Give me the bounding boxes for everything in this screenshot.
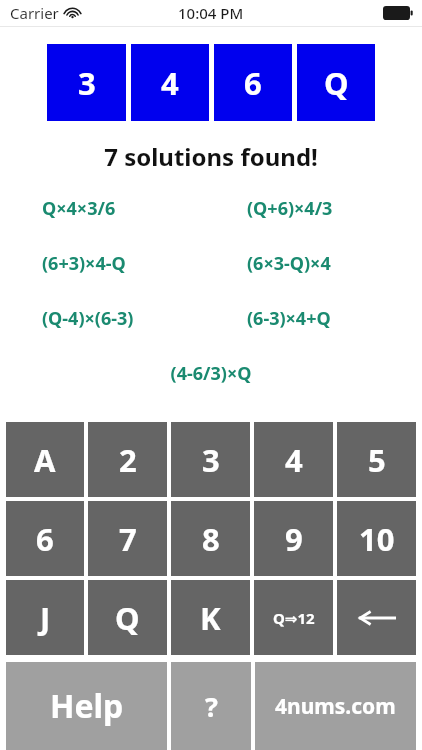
button[interactable]: 4nums.com — [255, 662, 416, 750]
button[interactable]: Backspace — [337, 580, 416, 655]
button[interactable]: Q — [88, 580, 167, 655]
staticText: ? — [205, 688, 218, 725]
button[interactable]: 9 — [254, 501, 333, 576]
staticText: K — [200, 597, 221, 639]
staticText: 4 — [161, 62, 179, 104]
staticText: 9 — [285, 518, 303, 560]
button[interactable]: 3 — [171, 422, 250, 497]
staticText: Q — [115, 597, 140, 639]
staticText: 2 — [119, 439, 137, 481]
staticText: (4-6/3)×Q — [0, 361, 422, 386]
staticText: Q — [324, 62, 349, 104]
button[interactable]: 3 — [47, 44, 126, 121]
button[interactable]: 5 — [337, 422, 416, 497]
button[interactable]: J — [6, 580, 84, 655]
staticText: 8 — [202, 518, 220, 560]
staticText: J — [40, 597, 51, 639]
button[interactable]: 2 — [88, 422, 167, 497]
staticText: 5 — [368, 439, 386, 481]
button[interactable]: 7 — [88, 501, 167, 576]
staticText: (Q+6)×4/3 — [247, 196, 333, 221]
staticText: 4 — [285, 439, 303, 481]
staticText: (6-3)×4+Q — [247, 306, 331, 331]
button[interactable]: 4 — [254, 422, 333, 497]
button[interactable]: A — [6, 422, 84, 497]
staticText: Q⇒12 — [273, 608, 315, 628]
button[interactable]: Q⇒12 — [254, 580, 333, 655]
button[interactable]: Help — [6, 662, 167, 750]
staticText: 10:04 PM — [178, 3, 244, 23]
button[interactable]: 6 — [214, 44, 292, 121]
staticText: (Q-4)×(6-3) — [42, 306, 134, 331]
staticText: Q×4×3/6 — [42, 196, 116, 221]
staticText: 6 — [244, 62, 262, 104]
button[interactable]: Q — [297, 44, 375, 121]
staticText: 10 — [359, 518, 395, 560]
staticText: Help — [50, 684, 124, 728]
staticText: (6×3-Q)×4 — [247, 251, 331, 276]
staticText: 4nums.com — [275, 692, 396, 721]
staticText: 6 — [36, 518, 54, 560]
button[interactable]: ? — [171, 662, 251, 750]
staticText: (6+3)×4-Q — [42, 251, 126, 276]
button[interactable]: 10 — [337, 501, 416, 576]
button[interactable]: 8 — [171, 501, 250, 576]
staticText: 3 — [202, 439, 220, 481]
staticText: Carrier — [10, 3, 59, 23]
staticText: 7 — [119, 518, 137, 560]
button[interactable]: 4 — [131, 44, 209, 121]
staticText: 3 — [78, 62, 96, 104]
button[interactable]: 6 — [6, 501, 84, 576]
staticText: 7 solutions found! — [0, 140, 422, 173]
button[interactable]: K — [171, 580, 250, 655]
staticText: A — [34, 439, 56, 481]
